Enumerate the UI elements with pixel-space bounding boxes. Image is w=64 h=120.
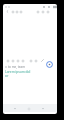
button[interactable]: Print (33, 58, 38, 63)
button[interactable]: Move to (35, 9, 40, 14)
button[interactable]: Home (26, 106, 32, 112)
button[interactable]: Reply all (10, 58, 15, 63)
staticText: to me, team (8, 65, 26, 69)
button[interactable]: Attach (20, 58, 25, 63)
button[interactable]: Edit (40, 58, 45, 63)
button[interactable]: Forward (15, 58, 20, 63)
button[interactable]: Delete (14, 9, 19, 14)
button[interactable]: Add label (40, 9, 45, 14)
button[interactable]: More options (45, 9, 50, 14)
button[interactable]: Reply (5, 58, 10, 63)
staticText: or (5, 74, 9, 78)
button[interactable]: Recents (40, 106, 46, 112)
button[interactable]: Back (12, 106, 18, 112)
button[interactable]: Mark unread (18, 9, 23, 14)
button[interactable]: Archive (10, 9, 15, 14)
staticText: Lorem ipsum dol (5, 70, 31, 74)
button[interactable]: Star (28, 58, 33, 63)
button[interactable]: Back (5, 9, 10, 14)
